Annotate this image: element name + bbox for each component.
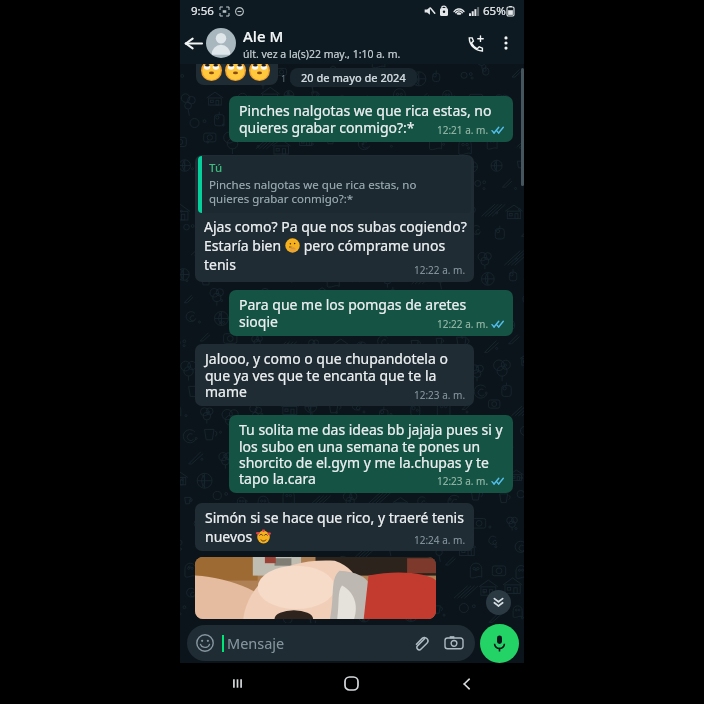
button[interactable]: Back (409, 663, 524, 704)
staticText: 9:56 (191, 3, 214, 19)
staticText: Para que me los pomgas de aretes sioqie (239, 295, 467, 331)
button[interactable]: Tu solita me das ideas bb jajaja pues si… (229, 415, 513, 493)
staticText: últ. vez a la(s)22 may., 1:10 a. m. (243, 47, 401, 61)
staticText: Jalooo, y como o que chupandotela o que … (205, 349, 448, 401)
button[interactable]: Recents (180, 663, 294, 704)
button[interactable]: Scroll to bottom (486, 590, 511, 615)
staticText: tenis (204, 255, 236, 274)
staticText: Pinches nalgotas we que rica estas, no q… (209, 177, 417, 207)
button[interactable]: Simón si se hace que rico, y traeré teni… (195, 503, 474, 551)
staticText: nuevos (205, 527, 256, 546)
button[interactable]: Pinches nalgotas we que rica estas, no q… (229, 96, 513, 142)
staticText: Pinches nalgotas we que rica estas, no q… (239, 101, 492, 137)
button[interactable]: More options (492, 22, 519, 64)
staticText: Mensaje (227, 633, 285, 653)
button[interactable]: Jalooo, y como o que chupandotela o que … (195, 344, 474, 406)
staticText: Tu solita me das ideas bb jajaja pues si… (239, 420, 503, 488)
button[interactable]: Para que me los pomgas de aretes sioqie (229, 290, 513, 336)
staticText: 12:23 a. m. (414, 388, 466, 402)
button[interactable]: Camera (443, 632, 465, 654)
staticText: 20 de mayo de 2024 (301, 70, 406, 85)
staticText: Simón si se hace que rico, y traeré teni… (205, 508, 464, 527)
button[interactable]: Tú (195, 155, 474, 282)
staticText: Estaría bien (204, 236, 285, 255)
button[interactable]: Home (294, 663, 409, 704)
button[interactable]: Voice message (480, 624, 519, 663)
button[interactable]: Mensaje (187, 625, 475, 661)
staticText: 12:24 a. m. (414, 533, 466, 547)
staticText: 65% (483, 3, 506, 19)
staticText: 12:22 a. m. (437, 317, 489, 331)
staticText: 12:22 a. m. (414, 263, 466, 277)
button[interactable]: Ale M (206, 22, 460, 64)
staticText: 1 (281, 72, 287, 84)
staticText: pero cómprame unos (300, 236, 446, 255)
button[interactable]: Photo (195, 557, 436, 619)
staticText: Tú (209, 160, 223, 176)
button[interactable]: Attach (409, 632, 431, 654)
button[interactable]: Back (180, 22, 206, 64)
staticText: Ale M (243, 26, 284, 46)
button[interactable]: Video call (460, 22, 492, 64)
staticText: 12:21 a. m. (437, 123, 489, 137)
staticText: 12:23 a. m. (437, 474, 489, 488)
staticText: Ajas como? Pa que nos subas cogiendo? (204, 217, 467, 236)
